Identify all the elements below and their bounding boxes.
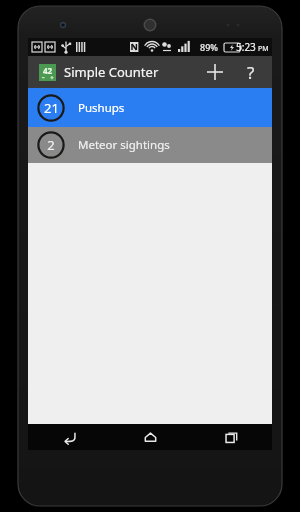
button[interactable]: Add counter [198,56,232,88]
button[interactable]: Recent apps [191,424,272,450]
button[interactable]: Back [28,424,110,450]
staticText: PM [258,44,269,54]
button[interactable]: Help [234,56,268,88]
staticText: ? [247,61,255,84]
staticText: Meteor sightings [78,137,170,153]
staticText: 89% [200,41,218,53]
staticText: 2 [47,136,55,154]
staticText: 5:23 [236,40,256,54]
staticText: 21 [44,99,59,117]
staticText: Simple Counter [64,63,159,81]
button[interactable]: Home [110,424,191,450]
staticText: 42 [43,65,53,76]
button[interactable]: 21 [28,88,272,127]
staticText: Pushups [78,100,125,116]
button[interactable]: 2 [28,127,272,163]
